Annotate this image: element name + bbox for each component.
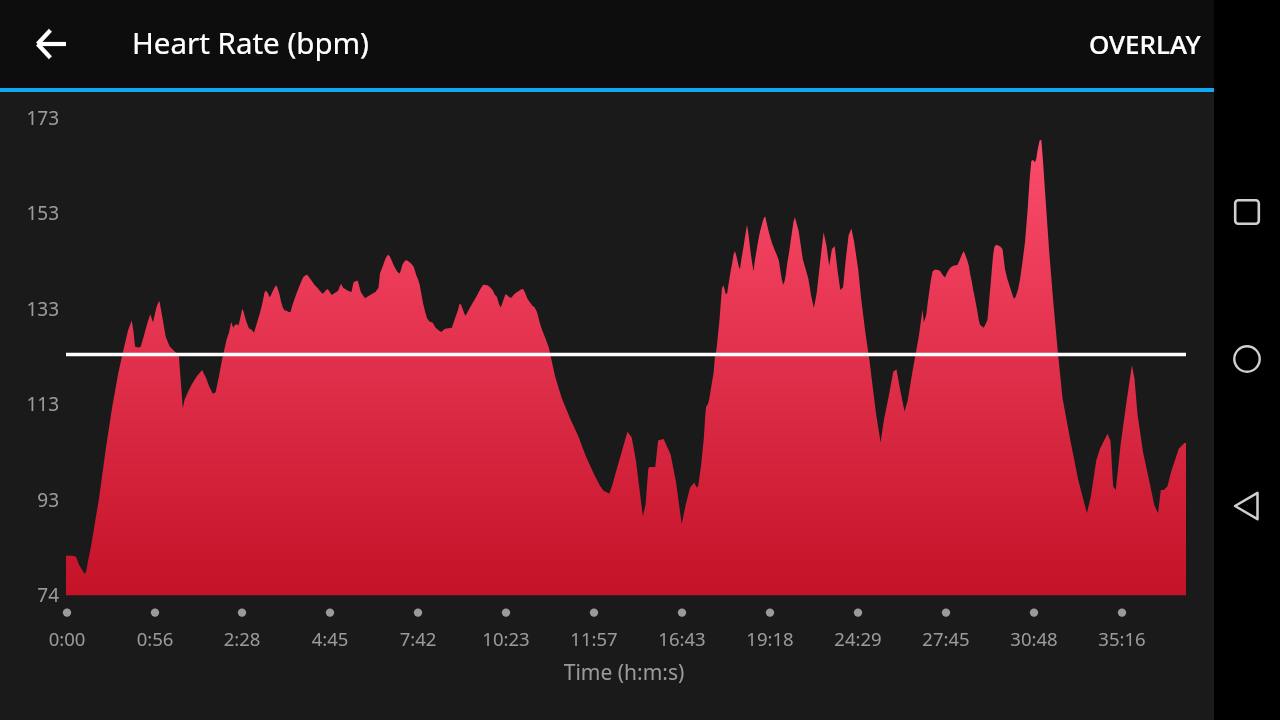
staticText: OVERLAY bbox=[1089, 26, 1201, 61]
staticText: 4:45 bbox=[280, 626, 380, 651]
staticText: 0:56 bbox=[105, 626, 205, 651]
staticText: 16:43 bbox=[632, 626, 732, 651]
staticText: 74 bbox=[2, 582, 59, 608]
staticText: Heart Rate (bpm) bbox=[132, 22, 369, 62]
staticText: 27:45 bbox=[896, 626, 996, 651]
button[interactable]: Home bbox=[1214, 326, 1280, 392]
staticText: 113 bbox=[2, 391, 59, 417]
staticText: 0:00 bbox=[17, 626, 117, 651]
staticText: 2:28 bbox=[192, 626, 292, 651]
staticText: 10:23 bbox=[456, 626, 556, 651]
button[interactable]: Back bbox=[1214, 473, 1280, 539]
staticText: Time (h:m:s) bbox=[524, 658, 724, 687]
staticText: 93 bbox=[2, 487, 59, 513]
staticText: 7:42 bbox=[368, 626, 468, 651]
button[interactable]: Recent apps bbox=[1214, 179, 1280, 245]
staticText: 133 bbox=[2, 296, 59, 322]
staticText: 173 bbox=[2, 105, 59, 131]
staticText: 30:48 bbox=[984, 626, 1084, 651]
staticText: 11:57 bbox=[544, 626, 644, 651]
button[interactable]: Back bbox=[19, 12, 83, 76]
button[interactable]: OVERLAY bbox=[1076, 4, 1214, 83]
staticText: 153 bbox=[2, 200, 59, 226]
staticText: 19:18 bbox=[720, 626, 820, 651]
staticText: 24:29 bbox=[808, 626, 908, 651]
staticText: 35:16 bbox=[1072, 626, 1172, 651]
